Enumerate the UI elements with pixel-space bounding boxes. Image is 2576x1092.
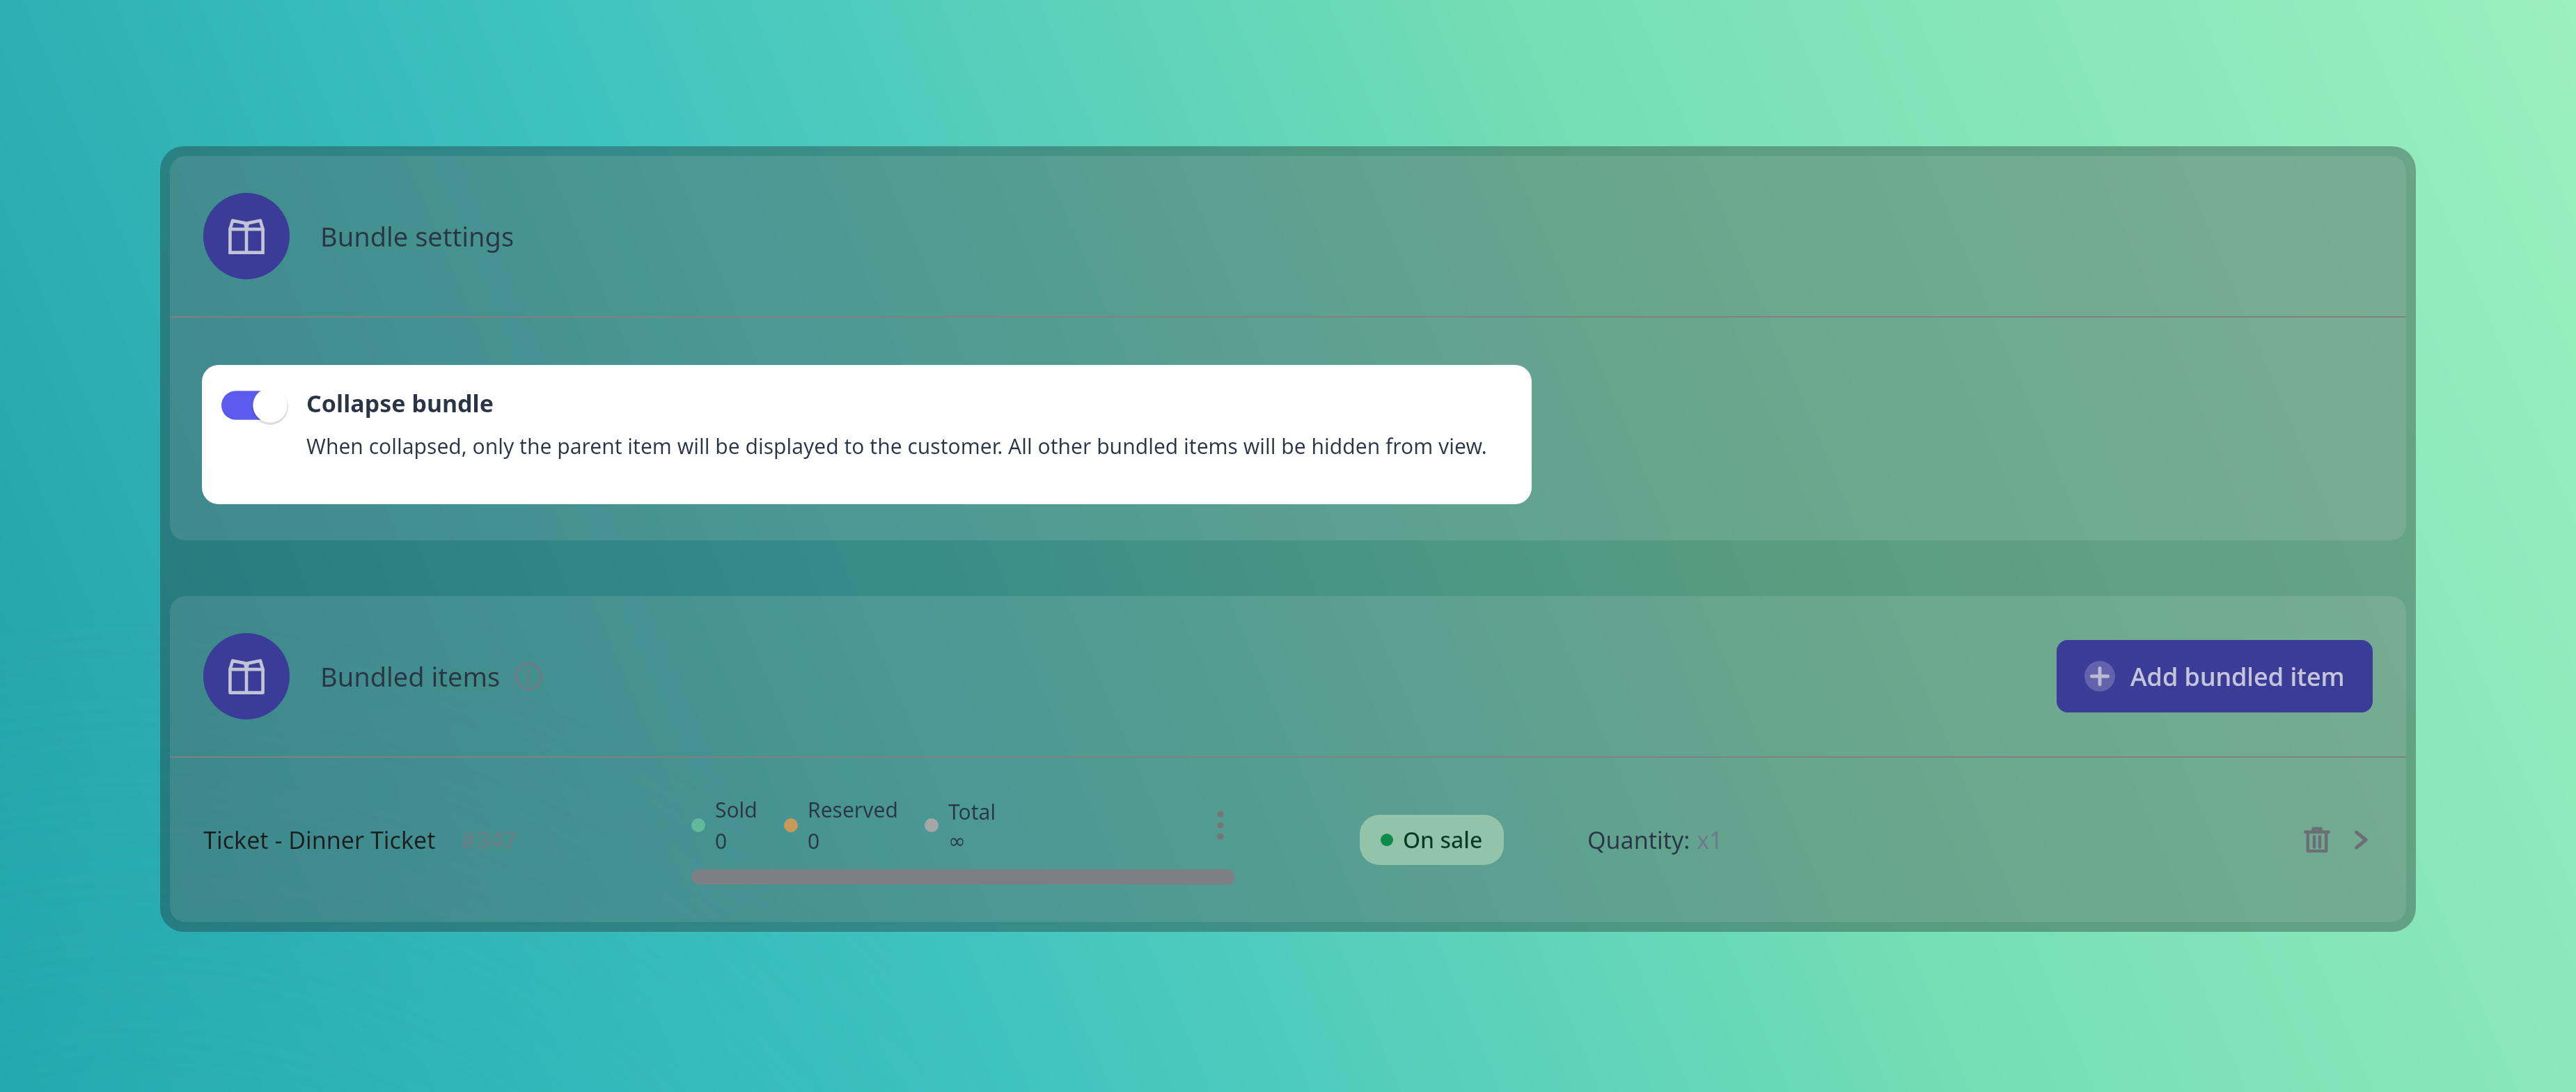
staticText: 0 (715, 827, 728, 855)
button[interactable]: Collapse bundle toggle (221, 387, 288, 423)
button[interactable]: Add bundled item (2057, 640, 2373, 712)
staticText: Add bundled item (2130, 660, 2345, 694)
button[interactable]: On sale (1360, 815, 1504, 865)
staticText: ∞ (948, 829, 966, 853)
button[interactable]: Open item (2343, 822, 2378, 857)
staticText: On sale (1403, 825, 1483, 855)
button[interactable]: More options (1207, 811, 1234, 839)
staticText: Quantity: (1587, 824, 1697, 856)
button[interactable]: Information (515, 662, 542, 690)
staticText: x1 (1697, 824, 1723, 856)
staticText: 0 (808, 827, 820, 855)
staticText: When collapsed, only the parent item wil… (306, 432, 1487, 460)
staticText: #347 (461, 824, 517, 856)
staticText: Reserved (808, 795, 898, 824)
staticText: Bundled items (320, 658, 501, 694)
staticText: Bundle settings (320, 218, 515, 254)
button[interactable]: Delete (2298, 820, 2337, 859)
button[interactable]: Collapse bundle toggle (202, 365, 1532, 504)
staticText: Sold (715, 795, 757, 824)
staticText: Ticket - Dinner Ticket (203, 824, 436, 856)
staticText: Collapse bundle (306, 387, 494, 419)
button[interactable]: Ticket - Dinner Ticket (170, 758, 2406, 922)
staticText: Total (948, 797, 996, 826)
